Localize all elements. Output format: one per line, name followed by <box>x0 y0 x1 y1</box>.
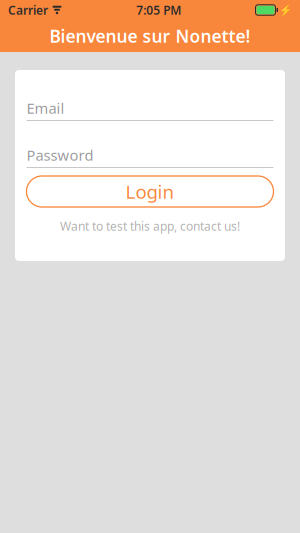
staticText: 7:05 PM <box>136 2 181 18</box>
button[interactable]: Password <box>26 147 273 168</box>
staticText: Password <box>26 145 93 165</box>
button[interactable]: Want to test this app, contact us! <box>30 219 270 233</box>
staticText: Bienvenue sur Nonette! <box>49 24 250 47</box>
staticText: Carrier <box>8 2 48 18</box>
staticText: Login <box>125 179 174 204</box>
button[interactable]: Email <box>26 100 273 121</box>
staticText: Email <box>26 98 64 118</box>
staticText: ⚡ <box>279 4 292 16</box>
button[interactable]: Login <box>26 176 273 207</box>
staticText: Want to test this app, contact us! <box>60 218 240 234</box>
